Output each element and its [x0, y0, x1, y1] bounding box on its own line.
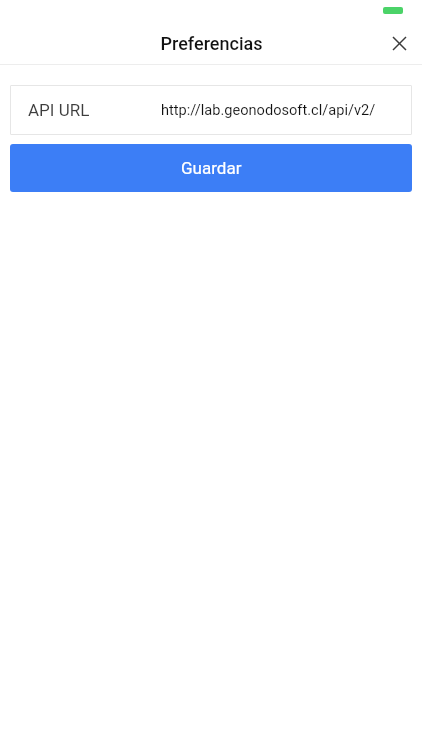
staticText: Preferencias — [160, 33, 263, 54]
button[interactable]: Guardar — [10, 144, 412, 192]
staticText: API URL — [28, 100, 90, 120]
staticText: Guardar — [181, 158, 242, 178]
button[interactable]: Cerrar — [387, 31, 411, 55]
staticText: http://lab.geonodosoft.cl/api/v2/ — [161, 101, 376, 118]
button[interactable]: API URL — [10, 85, 412, 135]
